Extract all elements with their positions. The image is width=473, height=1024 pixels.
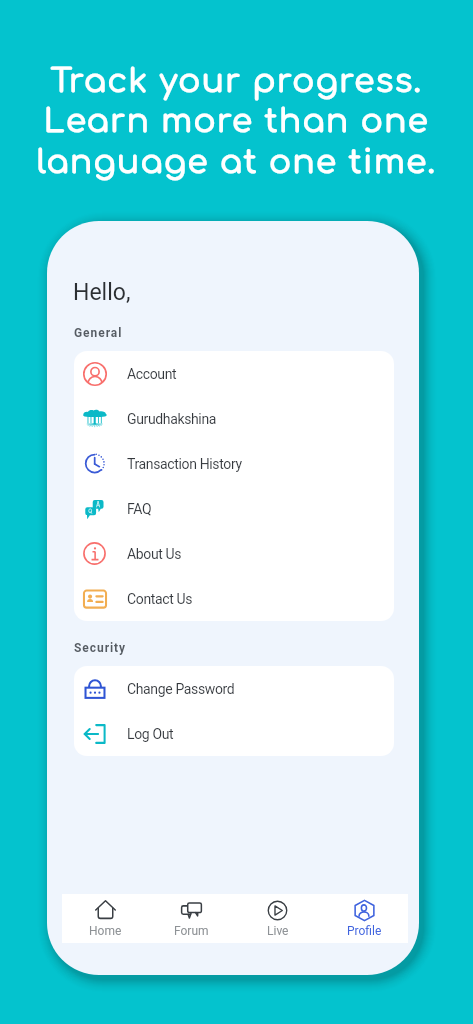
- button[interactable]: About Us: [74, 531, 394, 576]
- staticText: Change Password: [127, 681, 235, 697]
- staticText: Track your progress. Learn more than one…: [0, 63, 473, 181]
- staticText: Transaction History: [127, 456, 242, 472]
- button[interactable]: Account: [74, 351, 394, 396]
- staticText: Log Out: [127, 726, 174, 742]
- staticText: About Us: [127, 546, 182, 562]
- button[interactable]: Profile: [321, 894, 408, 943]
- button[interactable]: Transaction History: [74, 441, 394, 486]
- staticText: Forum: [174, 924, 209, 938]
- button[interactable]: Live: [234, 894, 321, 943]
- button[interactable]: Change Password: [74, 666, 394, 711]
- button[interactable]: Log Out: [74, 711, 394, 756]
- staticText: Contact Us: [127, 591, 193, 607]
- staticText: Gurudhakshina: [127, 411, 217, 427]
- staticText: Home: [89, 924, 122, 938]
- staticText: Live: [267, 924, 289, 938]
- staticText: Account: [127, 366, 177, 382]
- button[interactable]: Gurudhakshina: [74, 396, 394, 441]
- staticText: Profile: [347, 924, 382, 938]
- button[interactable]: FAQ: [74, 486, 394, 531]
- button[interactable]: Contact Us: [74, 576, 394, 621]
- staticText: Hello,: [73, 279, 131, 306]
- button[interactable]: Forum: [148, 894, 234, 943]
- staticText: Security: [74, 641, 127, 655]
- staticText: General: [74, 326, 123, 340]
- button[interactable]: Home: [62, 894, 148, 943]
- staticText: FAQ: [127, 501, 152, 517]
